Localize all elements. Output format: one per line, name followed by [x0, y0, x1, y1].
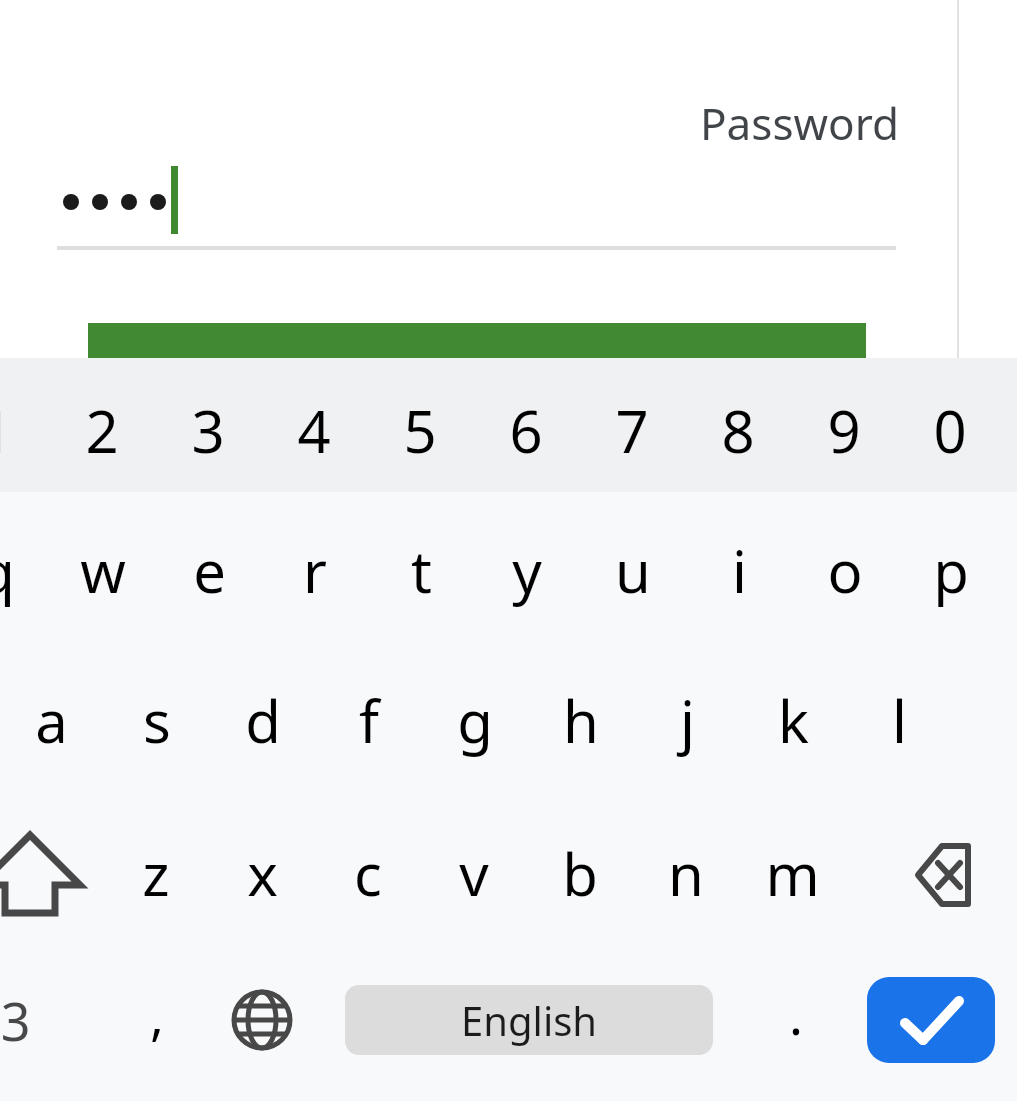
- button[interactable]: l: [819, 650, 979, 790]
- button[interactable]: 8: [658, 360, 818, 500]
- button[interactable]: k: [713, 650, 873, 790]
- staticText: d: [245, 681, 281, 760]
- staticText: p: [933, 531, 969, 610]
- button[interactable]: o: [765, 500, 925, 640]
- staticText: 3: [191, 391, 225, 470]
- button[interactable]: m: [712, 803, 872, 943]
- button[interactable]: i: [659, 500, 819, 640]
- button[interactable]: 6: [446, 360, 606, 500]
- staticText: z: [142, 834, 170, 913]
- button[interactable]: Done: [867, 977, 995, 1063]
- button[interactable]: s: [77, 650, 237, 790]
- staticText: Password: [700, 93, 900, 153]
- staticText: 5: [403, 391, 437, 470]
- staticText: 4: [297, 391, 331, 470]
- staticText: j: [680, 681, 695, 760]
- staticText: r: [303, 531, 327, 610]
- staticText: u: [615, 531, 651, 610]
- button[interactable]: q: [0, 500, 77, 640]
- staticText: 9: [827, 391, 861, 470]
- button[interactable]: 7: [552, 360, 712, 500]
- staticText: x: [247, 834, 278, 913]
- button[interactable]: English: [345, 985, 713, 1055]
- button[interactable]: 123: [0, 950, 66, 1090]
- button[interactable]: d: [183, 650, 343, 790]
- staticText: 1: [0, 391, 13, 470]
- button[interactable]: e: [129, 500, 289, 640]
- staticText: 8: [721, 391, 755, 470]
- button[interactable]: Change keyboard language: [207, 965, 317, 1075]
- button[interactable]: v: [394, 803, 554, 943]
- button[interactable]: Shift: [0, 813, 90, 935]
- staticText: g: [457, 681, 493, 760]
- staticText: 6: [509, 391, 543, 470]
- staticText: m: [765, 834, 820, 913]
- button[interactable]: p: [871, 500, 1017, 640]
- button[interactable]: t: [341, 500, 501, 640]
- staticText: n: [668, 834, 704, 913]
- button[interactable]: j: [607, 650, 767, 790]
- staticText: k: [778, 681, 809, 760]
- button[interactable]: 0: [870, 360, 1017, 500]
- button[interactable]: 5: [340, 360, 500, 500]
- staticText: English: [461, 993, 598, 1047]
- button[interactable]: z: [76, 803, 236, 943]
- button[interactable]: n: [606, 803, 766, 943]
- staticText: c: [354, 834, 382, 913]
- staticText: ,: [150, 979, 164, 1050]
- button[interactable]: u: [553, 500, 713, 640]
- staticText: t: [411, 531, 432, 610]
- button[interactable]: .: [716, 944, 876, 1084]
- staticText: e: [193, 531, 226, 610]
- staticText: 7: [615, 391, 649, 470]
- staticText: f: [359, 681, 379, 760]
- button[interactable]: b: [500, 803, 660, 943]
- button[interactable]: w: [23, 500, 183, 640]
- button[interactable]: 4: [234, 360, 394, 500]
- staticText: l: [892, 681, 907, 760]
- staticText: 2: [85, 391, 119, 470]
- staticText: s: [143, 681, 171, 760]
- button[interactable]: a: [0, 650, 131, 790]
- button[interactable]: 2: [22, 360, 182, 500]
- button[interactable]: y: [447, 500, 607, 640]
- staticText: y: [512, 531, 542, 610]
- button[interactable]: Backspace: [880, 820, 990, 930]
- staticText: v: [459, 834, 489, 913]
- staticText: 123: [0, 985, 31, 1056]
- staticText: 0: [933, 391, 967, 470]
- button[interactable]: g: [395, 650, 555, 790]
- button[interactable]: r: [235, 500, 395, 640]
- button[interactable]: c: [288, 803, 448, 943]
- staticText: q: [0, 531, 15, 610]
- staticText: h: [563, 681, 599, 760]
- staticText: w: [80, 531, 126, 610]
- staticText: .: [789, 979, 803, 1050]
- button[interactable]: ,: [77, 944, 237, 1084]
- staticText: i: [732, 531, 747, 610]
- button[interactable]: f: [289, 650, 449, 790]
- button[interactable]: h: [501, 650, 661, 790]
- staticText: a: [35, 681, 68, 760]
- staticText: b: [562, 834, 598, 913]
- button[interactable]: x: [182, 803, 342, 943]
- button[interactable]: 9: [764, 360, 924, 500]
- staticText: o: [827, 531, 863, 610]
- button[interactable]: 3: [128, 360, 288, 500]
